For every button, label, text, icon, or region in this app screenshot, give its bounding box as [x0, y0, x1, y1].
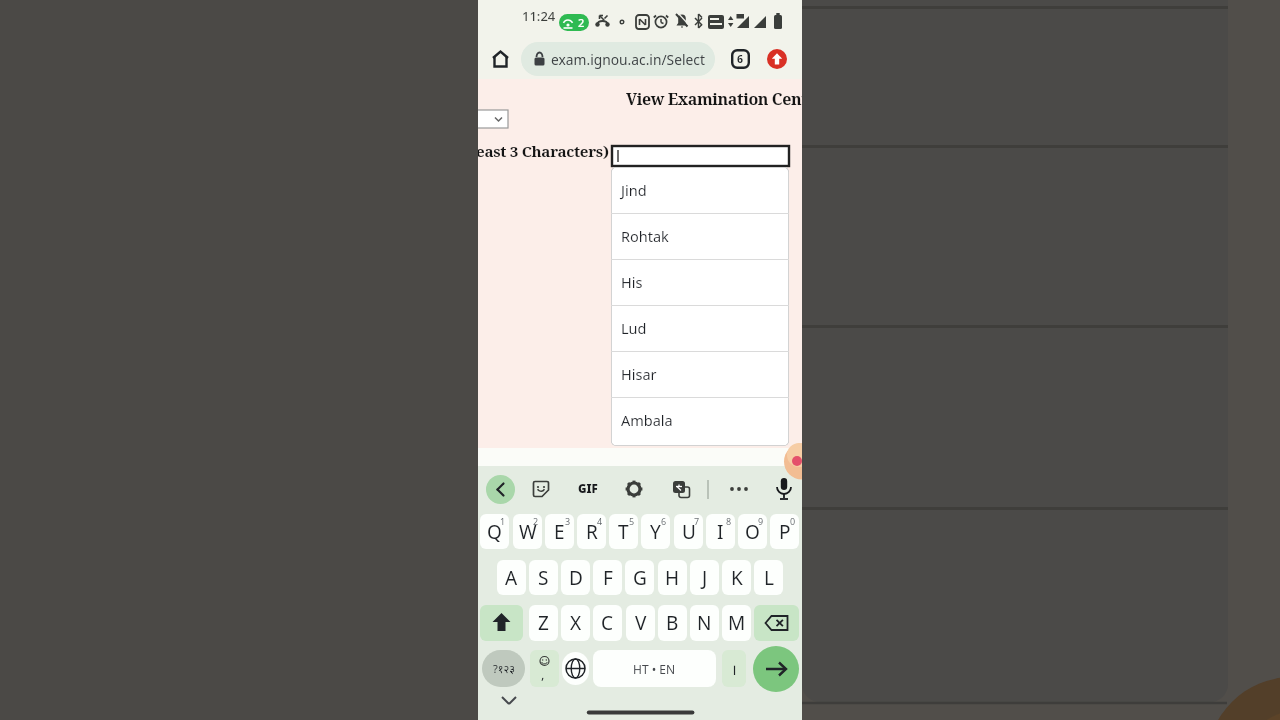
staticText: R	[586, 519, 598, 545]
staticText: 9	[758, 515, 764, 527]
staticText: HT • EN	[633, 661, 676, 677]
staticText: Ambala	[621, 410, 673, 430]
button[interactable]	[672, 480, 690, 498]
staticText: 7	[694, 515, 700, 527]
staticText: L	[764, 565, 774, 591]
staticText: 2	[578, 15, 585, 30]
button[interactable]: X	[561, 605, 590, 641]
staticText: D	[569, 565, 583, 591]
button[interactable]: B	[658, 605, 687, 641]
staticText: N	[697, 610, 712, 636]
button[interactable]: GIF	[576, 481, 600, 497]
button[interactable]: Hisar	[611, 351, 789, 397]
button[interactable]: His	[611, 259, 789, 305]
button[interactable]	[774, 477, 794, 502]
button[interactable]: D	[561, 560, 590, 595]
button[interactable]: HT • EN	[593, 650, 716, 687]
staticText: 5	[629, 515, 635, 527]
button[interactable]: Y	[641, 514, 670, 549]
button[interactable]	[480, 605, 523, 641]
button[interactable]: Ambala	[611, 397, 789, 443]
button[interactable]: G	[625, 560, 654, 595]
staticText: ,	[541, 665, 545, 683]
staticText: 1	[500, 515, 506, 527]
button[interactable]: M	[722, 605, 751, 641]
staticText: 8	[726, 515, 732, 527]
button[interactable]: Q	[480, 514, 509, 549]
button[interactable]: P	[770, 514, 799, 549]
staticText: X	[570, 610, 582, 636]
staticText: Jind	[621, 180, 647, 200]
staticText: Rohtak	[621, 226, 669, 246]
staticText: GIF	[578, 481, 598, 497]
button[interactable]: W	[513, 514, 542, 549]
button[interactable]: E	[545, 514, 574, 549]
button[interactable]: U	[674, 514, 703, 549]
button[interactable]: N	[690, 605, 719, 641]
staticText: View Examination Centre	[626, 88, 802, 110]
button[interactable]: ।	[722, 650, 746, 687]
staticText: 6	[661, 515, 667, 527]
button[interactable]	[532, 480, 550, 498]
button[interactable]: 6	[731, 49, 750, 69]
button[interactable]	[728, 481, 750, 497]
button[interactable]	[767, 49, 787, 69]
button[interactable]: I	[706, 514, 735, 549]
staticText: W	[519, 519, 537, 545]
staticText: U	[682, 519, 696, 545]
button[interactable]: Jind	[611, 167, 789, 213]
staticText: 11:24	[522, 7, 556, 25]
button[interactable]: Lud	[611, 305, 789, 351]
staticText: Lud	[621, 318, 647, 338]
button[interactable]: exam.ignou.ac.in/Select	[521, 42, 715, 76]
staticText: 6	[737, 52, 744, 66]
staticText: H	[665, 565, 680, 591]
staticText: S	[538, 565, 549, 591]
staticText: B	[666, 610, 679, 636]
staticText: T	[618, 519, 629, 545]
button[interactable]	[486, 475, 515, 504]
staticText: east 3 Characters)	[478, 141, 609, 162]
button[interactable]: R	[577, 514, 606, 549]
button[interactable]: ?१२३	[482, 650, 525, 687]
button[interactable]: S	[529, 560, 558, 595]
staticText: His	[621, 272, 643, 292]
button[interactable]: J	[690, 560, 719, 595]
staticText: Q	[487, 519, 502, 545]
staticText: V	[635, 610, 647, 636]
staticText: Hisar	[621, 364, 657, 384]
staticText: 3	[565, 515, 571, 527]
button[interactable]: O	[738, 514, 767, 549]
button[interactable]: F	[593, 560, 622, 595]
staticText: 4	[597, 515, 603, 527]
staticText: exam.ignou.ac.in/Select	[551, 50, 705, 69]
button[interactable]	[612, 146, 789, 166]
button[interactable]	[562, 652, 589, 685]
button[interactable]: L	[754, 560, 783, 595]
button[interactable]: Rohtak	[611, 213, 789, 259]
button[interactable]: C	[593, 605, 622, 641]
button[interactable]: H	[658, 560, 687, 595]
staticText: G	[633, 565, 647, 591]
button[interactable]: V	[626, 605, 655, 641]
staticText: Z	[538, 610, 549, 636]
staticText: ?१२३	[493, 661, 515, 676]
staticText: J	[702, 565, 708, 591]
staticText: I	[717, 519, 724, 545]
button[interactable]: K	[722, 560, 751, 595]
button[interactable]: T	[609, 514, 638, 549]
button[interactable]	[478, 110, 508, 128]
button[interactable]	[625, 480, 643, 498]
staticText: C	[601, 610, 614, 636]
button[interactable]	[753, 646, 799, 692]
staticText: E	[554, 519, 565, 545]
button[interactable]: A	[497, 560, 526, 595]
button[interactable]: Z	[529, 605, 558, 641]
button[interactable]	[754, 605, 799, 641]
button[interactable]	[491, 49, 510, 69]
button[interactable]: ,	[530, 650, 559, 687]
staticText: 2	[533, 515, 539, 527]
staticText: ।	[731, 659, 737, 679]
staticText: P	[779, 519, 791, 545]
staticText: 0	[790, 515, 796, 527]
